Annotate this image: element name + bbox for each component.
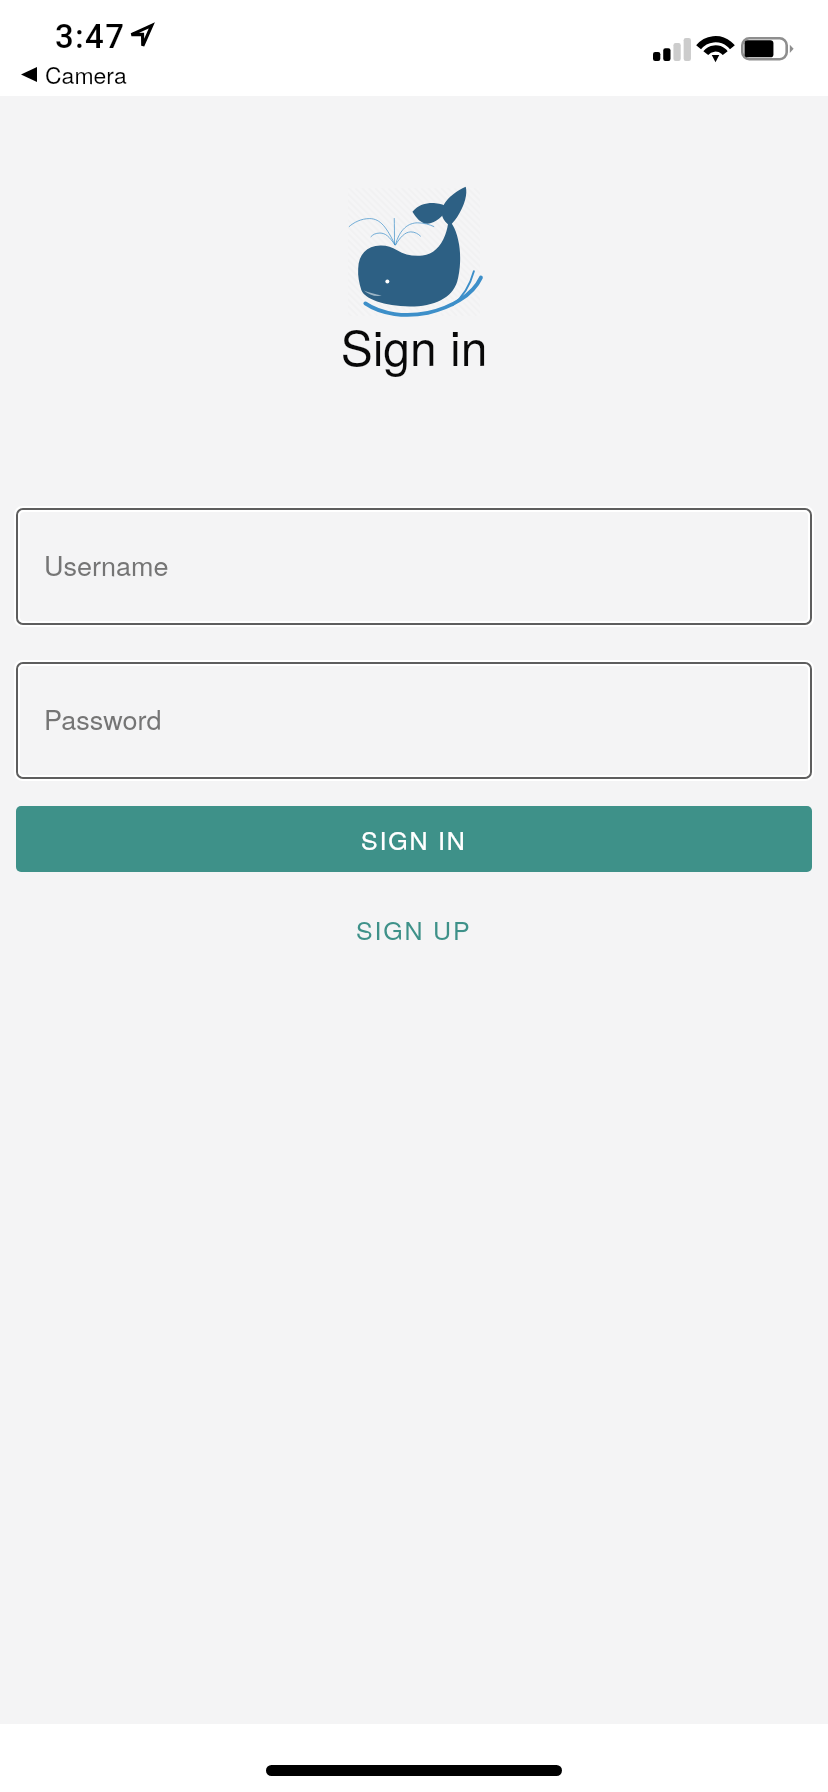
staticText: Password: [44, 699, 162, 738]
staticText: Sign in: [0, 311, 828, 380]
button[interactable]: Username: [14, 506, 814, 627]
staticText: Camera: [45, 58, 127, 91]
button[interactable]: SIGN IN: [16, 806, 812, 872]
other: Battery: [741, 37, 795, 62]
staticText: SIGN IN: [361, 821, 467, 857]
other: Cellular signal: [653, 38, 691, 61]
other: Location services active: [131, 25, 152, 46]
other: Wi-Fi connected: [699, 36, 732, 61]
staticText: 3:47: [55, 17, 126, 56]
staticText: SIGN UP: [356, 911, 472, 947]
button[interactable]: SIGN UP: [16, 888, 812, 970]
button[interactable]: Password: [14, 660, 814, 781]
button[interactable]: Back to Camera: [21, 58, 127, 91]
staticText: Username: [44, 545, 169, 584]
